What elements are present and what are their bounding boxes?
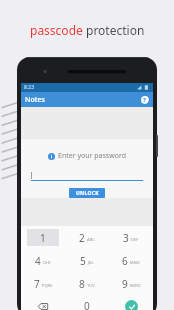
staticText: 8:23	[24, 84, 34, 91]
staticText: PQRS	[42, 283, 53, 288]
staticText: 7	[34, 277, 40, 291]
button[interactable]: 3	[115, 229, 147, 246]
staticText: Notes	[25, 95, 45, 105]
staticText: 8	[79, 277, 85, 291]
staticText: 1	[40, 231, 46, 245]
button[interactable]: Backspace	[21, 295, 65, 310]
button[interactable]: 9	[115, 275, 147, 292]
staticText: 6	[122, 254, 128, 268]
staticText: TUV	[87, 283, 95, 288]
staticText: protection	[86, 22, 145, 38]
button[interactable]: 0	[65, 295, 109, 310]
staticText: DEF	[131, 237, 139, 242]
button[interactable]	[31, 171, 143, 181]
staticText: MNO	[130, 260, 140, 265]
staticText: 2	[79, 231, 85, 245]
button[interactable]: 8	[71, 275, 103, 292]
button[interactable]: UNLOCK	[69, 188, 105, 198]
button[interactable]: 2	[71, 229, 103, 246]
staticText: 3	[123, 231, 129, 245]
staticText: passcode	[30, 22, 86, 38]
staticText: UNLOCK	[76, 190, 99, 197]
button[interactable]: 5	[71, 252, 103, 269]
staticText: 5	[80, 254, 86, 268]
button[interactable]: 1	[27, 229, 59, 246]
button[interactable]: Confirm	[125, 300, 138, 310]
staticText: Enter your password	[58, 151, 126, 161]
staticText: 4	[35, 254, 41, 268]
staticText: JKL	[88, 260, 94, 265]
staticText: 0	[84, 299, 90, 310]
button[interactable]: 4	[27, 252, 59, 269]
button[interactable]: 7	[27, 275, 59, 292]
staticText: ?	[143, 96, 146, 104]
button[interactable]: Help	[140, 95, 149, 104]
staticText: GHI	[43, 260, 51, 265]
staticText: WXYZ	[130, 283, 141, 288]
button[interactable]: 6	[115, 252, 147, 269]
staticText: 9	[122, 277, 128, 291]
staticText: ABC	[87, 237, 95, 242]
